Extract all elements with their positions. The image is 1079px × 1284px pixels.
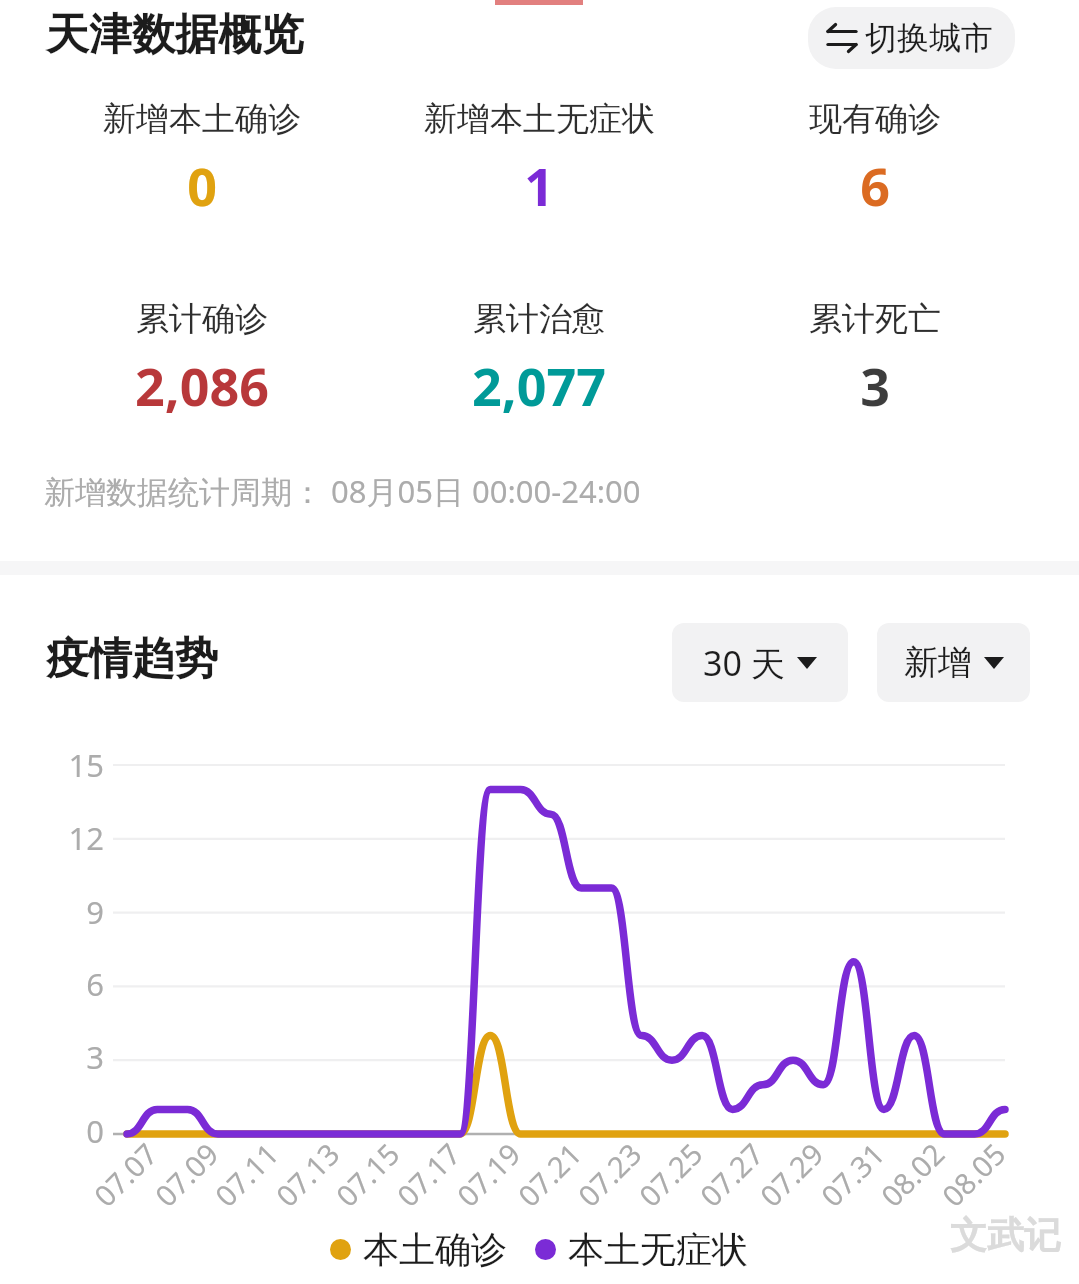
staticText: 文武记: [950, 1212, 1061, 1259]
staticText: 现有确诊: [809, 98, 941, 140]
button[interactable]: 累计治愈: [359, 298, 719, 421]
staticText: 本土确诊: [363, 1227, 507, 1272]
staticText: 1: [524, 150, 554, 221]
staticText: 累计死亡: [809, 298, 941, 340]
staticText: 07.15: [327, 1134, 408, 1214]
staticText: 3: [54, 1036, 104, 1078]
staticText: 累计确诊: [136, 298, 268, 340]
staticText: 08.05: [933, 1134, 1014, 1214]
button[interactable]: 现有确诊: [695, 98, 1055, 221]
staticText: 新增本土无症状: [424, 98, 655, 140]
staticText: 07.19: [448, 1134, 529, 1214]
staticText: 2,086: [135, 350, 269, 421]
other: Switch city: [826, 22, 858, 54]
staticText: 07.21: [509, 1134, 590, 1214]
staticText: 新增数据统计周期： 08月05日 00:00-24:00: [44, 470, 641, 512]
staticText: 07.09: [146, 1134, 227, 1214]
staticText: 6: [860, 150, 890, 221]
button[interactable]: 新增本土确诊: [22, 98, 382, 221]
staticText: 天津数据概览: [46, 8, 304, 62]
button[interactable]: 累计确诊: [22, 298, 382, 421]
staticText: 08.02: [872, 1134, 953, 1214]
button[interactable]: 30 天: [672, 623, 848, 702]
staticText: 30 天: [703, 640, 785, 686]
staticText: 切换城市: [865, 18, 993, 58]
button[interactable]: 新增本土无症状: [359, 98, 719, 221]
staticText: 07.25: [630, 1134, 711, 1214]
staticText: 07.27: [691, 1134, 772, 1214]
staticText: 疫情趋势: [46, 632, 218, 686]
staticText: 07.13: [267, 1134, 348, 1214]
staticText: 累计治愈: [473, 298, 605, 340]
button[interactable]: Switch city: [808, 7, 1015, 69]
staticText: 12: [54, 817, 104, 859]
staticText: 6: [54, 963, 104, 1005]
staticText: 07.23: [569, 1134, 650, 1214]
staticText: 3: [860, 350, 890, 421]
staticText: 新增: [904, 641, 972, 684]
staticText: 07.07: [85, 1134, 166, 1214]
staticText: 0: [187, 150, 217, 221]
staticText: 15: [54, 744, 104, 786]
button[interactable]: 累计死亡: [695, 298, 1055, 421]
staticText: 07.31: [812, 1134, 893, 1214]
staticText: 2,077: [472, 350, 606, 421]
staticText: 07.17: [388, 1134, 469, 1214]
button[interactable]: 新增: [877, 623, 1030, 702]
staticText: 新增本土确诊: [103, 98, 301, 140]
staticText: 07.11: [206, 1134, 287, 1214]
staticText: 9: [54, 891, 104, 933]
staticText: 0: [54, 1110, 104, 1152]
staticText: 本土无症状: [568, 1227, 748, 1272]
staticText: 07.29: [751, 1134, 832, 1214]
